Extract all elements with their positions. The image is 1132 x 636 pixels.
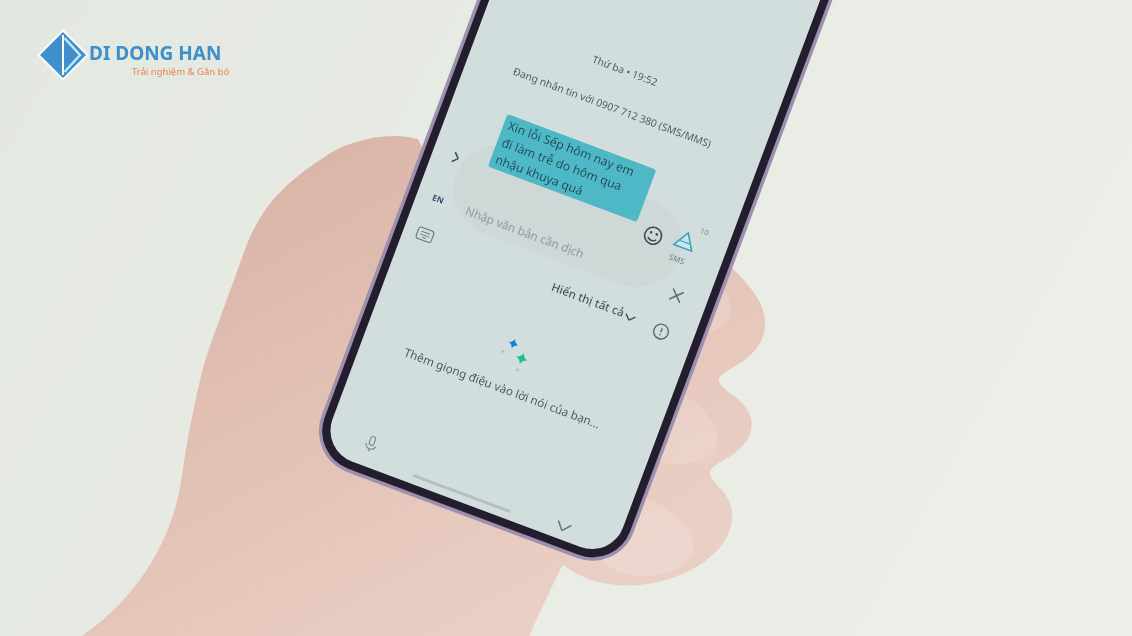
button[interactable]: Voice input [359, 430, 385, 456]
button[interactable]: Hiển thị tất cả [538, 286, 634, 312]
button[interactable]: Open keyboard [412, 224, 438, 246]
button[interactable]: EN language [424, 188, 452, 210]
button[interactable]: Collapse [550, 516, 578, 538]
button[interactable]: Thêm giọng điệu vào lời nói của bạn... [406, 331, 616, 403]
button[interactable]: Expand conversation options [443, 145, 469, 171]
button[interactable]: Add emoji [640, 223, 666, 249]
button[interactable]: Close [664, 283, 690, 309]
button[interactable]: More information [648, 319, 674, 345]
button[interactable]: Nhập văn bản cần dịch [455, 175, 679, 259]
button[interactable]: Send SMS [670, 224, 700, 258]
